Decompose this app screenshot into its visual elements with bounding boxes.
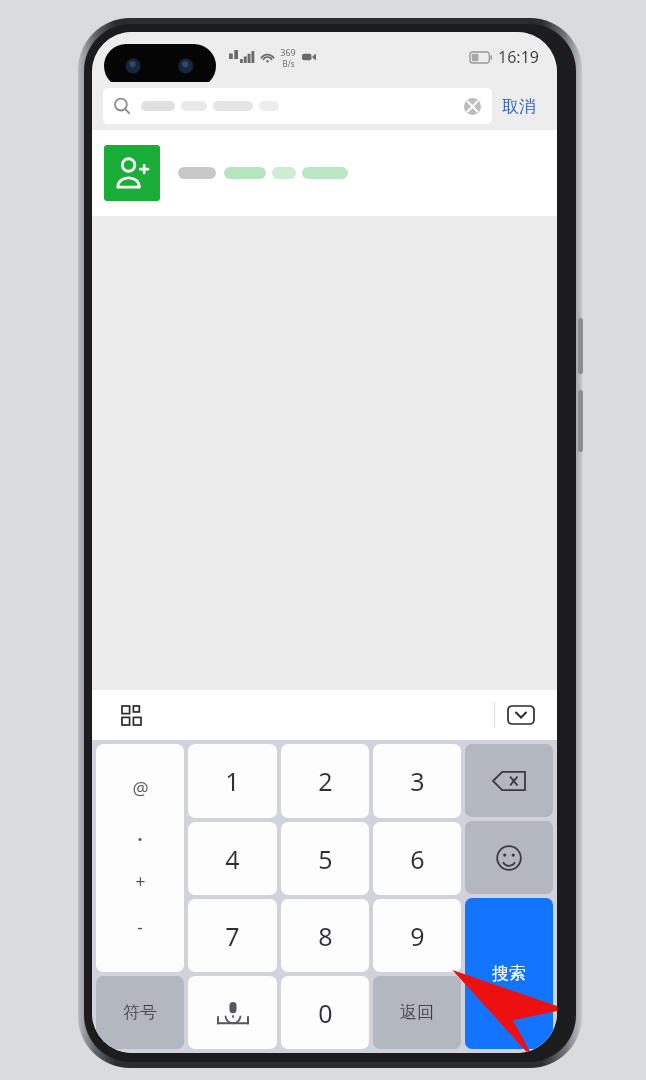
- staticText: 取消: [502, 96, 536, 117]
- button[interactable]: 9: [373, 899, 461, 972]
- other: Volume: [578, 318, 583, 374]
- button[interactable]: 6: [373, 822, 461, 895]
- staticText: @: [132, 776, 149, 801]
- staticText: 5: [318, 842, 333, 876]
- button[interactable]: Keyboard panel: [114, 698, 148, 732]
- button[interactable]: 搜索: [465, 898, 553, 1049]
- staticText: 16:19: [498, 46, 539, 68]
- button[interactable]: @: [96, 744, 184, 972]
- button[interactable]: Hide keyboard: [503, 697, 539, 733]
- staticText: 4: [225, 842, 240, 876]
- button[interactable]: 取消: [492, 88, 546, 124]
- staticText: 6: [410, 842, 425, 876]
- button[interactable]: 2: [281, 744, 369, 818]
- button[interactable]: 3: [373, 744, 461, 818]
- staticText: 0: [318, 996, 333, 1030]
- button[interactable]: Backspace: [465, 744, 553, 817]
- button[interactable]: Clear: [462, 96, 482, 116]
- button[interactable]: 8: [281, 899, 369, 972]
- staticText: 8: [318, 919, 333, 953]
- button[interactable]: 1: [188, 744, 277, 818]
- staticText: 1: [225, 764, 240, 798]
- button[interactable]: 返回: [373, 976, 461, 1049]
- staticText: 返回: [400, 1002, 434, 1023]
- staticText: 369: [280, 46, 296, 58]
- button[interactable]: [92, 130, 557, 216]
- button[interactable]: 4: [188, 822, 277, 895]
- button[interactable]: 0: [281, 976, 369, 1049]
- staticText: B/s: [282, 58, 295, 69]
- button[interactable]: Voice input: [188, 976, 277, 1049]
- staticText: 7: [225, 919, 240, 953]
- staticText: +: [135, 869, 146, 894]
- button[interactable]: Clear: [103, 88, 492, 124]
- staticText: 9: [410, 919, 425, 953]
- staticText: 搜索: [492, 963, 526, 984]
- button[interactable]: 5: [281, 822, 369, 895]
- staticText: .: [137, 822, 143, 847]
- other: Power: [578, 390, 583, 452]
- staticText: 符号: [123, 1002, 157, 1023]
- button[interactable]: Emoji: [465, 821, 553, 894]
- staticText: -: [137, 915, 143, 940]
- button[interactable]: 7: [188, 899, 277, 972]
- button[interactable]: 符号: [96, 976, 184, 1049]
- staticText: 2: [318, 764, 333, 798]
- staticText: 3: [410, 764, 425, 798]
